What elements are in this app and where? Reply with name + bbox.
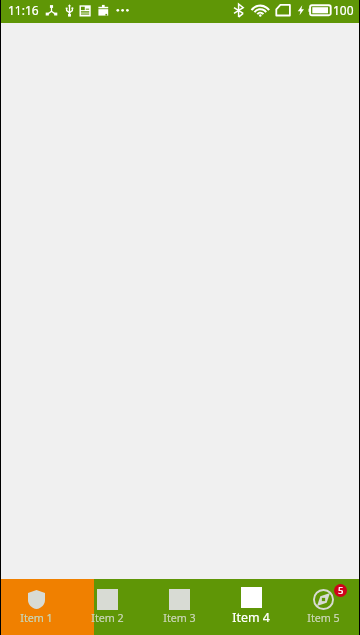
button[interactable]: Item 2 <box>72 579 143 635</box>
staticText: Item 1 <box>20 611 53 626</box>
button[interactable]: Item 3 <box>143 579 215 635</box>
button[interactable]: Item 5 <box>287 579 359 635</box>
staticText: 11:16 <box>8 2 39 18</box>
button[interactable]: Item 4 <box>215 579 287 635</box>
staticText: 100 <box>333 2 354 18</box>
staticText: Item 5 <box>307 611 340 626</box>
button[interactable]: Item 1 <box>1 579 72 635</box>
staticText: Item 3 <box>163 611 196 626</box>
staticText: Item 4 <box>232 609 270 626</box>
staticText: Item 2 <box>91 611 124 626</box>
staticText: 5 <box>338 584 344 597</box>
